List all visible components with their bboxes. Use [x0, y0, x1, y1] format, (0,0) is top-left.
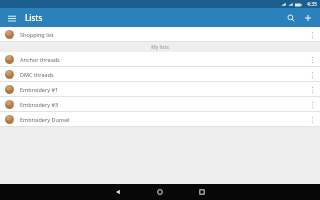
- button[interactable]: Embroidery #3: [0, 97, 320, 111]
- button[interactable]: Add list: [301, 11, 315, 25]
- button[interactable]: More options: [307, 98, 317, 111]
- staticText: DMC threads: [20, 71, 54, 78]
- button[interactable]: Embroidery Dunsel: [0, 112, 320, 126]
- staticText: Embroidery #1: [20, 86, 59, 93]
- button[interactable]: Anchor threads: [0, 52, 320, 66]
- button[interactable]: More options: [307, 113, 317, 126]
- button[interactable]: Search: [284, 11, 298, 25]
- button[interactable]: More options: [307, 83, 317, 96]
- button[interactable]: Back: [108, 184, 128, 200]
- staticText: Embroidery Dunsel: [20, 116, 70, 123]
- staticText: Embroidery #3: [20, 101, 59, 108]
- button[interactable]: More options: [307, 53, 317, 66]
- button[interactable]: Home: [150, 184, 170, 200]
- staticText: Anchor threads: [20, 56, 60, 63]
- button[interactable]: Open navigation drawer: [5, 11, 19, 25]
- staticText: Lists: [25, 12, 43, 23]
- button[interactable]: More options: [307, 28, 317, 41]
- button[interactable]: Shopping list: [0, 27, 320, 41]
- button[interactable]: More options: [307, 68, 317, 81]
- staticText: Shopping list: [20, 31, 54, 38]
- staticText: My lists: [151, 44, 169, 51]
- button[interactable]: Recent apps: [192, 184, 212, 200]
- button[interactable]: DMC threads: [0, 67, 320, 81]
- button[interactable]: Embroidery #1: [0, 82, 320, 96]
- staticText: 4:35: [307, 1, 317, 8]
